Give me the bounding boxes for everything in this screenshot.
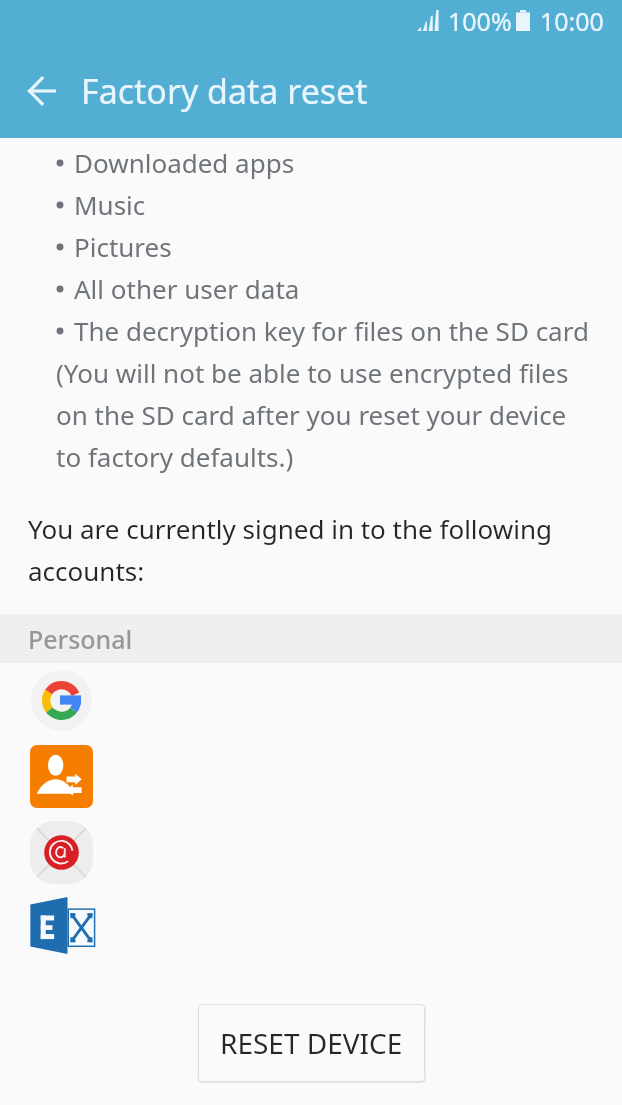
staticText: Pictures xyxy=(74,229,172,264)
staticText: on the SD card after you reset your devi… xyxy=(56,397,567,432)
staticText: The decryption key for files on the SD c… xyxy=(74,313,589,348)
staticText: Personal xyxy=(28,622,133,656)
button[interactable]: Exchange account xyxy=(29,896,96,955)
button[interactable]: Google account xyxy=(31,670,92,731)
button[interactable]: Email account xyxy=(30,821,93,884)
staticText: 100% xyxy=(448,4,512,36)
staticText: You are currently signed in to the follo… xyxy=(28,511,552,546)
staticText: Downloaded apps xyxy=(74,145,295,180)
staticText: to factory defaults.) xyxy=(56,439,294,474)
button[interactable]: Navigate up xyxy=(14,63,70,119)
staticText: All other user data xyxy=(74,271,300,306)
button[interactable]: Samsung account xyxy=(30,745,93,808)
staticText: Music xyxy=(74,187,146,222)
staticText: accounts: xyxy=(28,553,145,588)
staticText: RESET DEVICE xyxy=(220,1024,403,1062)
staticText: Factory data reset xyxy=(81,68,368,114)
button[interactable]: RESET DEVICE xyxy=(198,1004,425,1082)
staticText: 10:00 xyxy=(540,4,604,36)
staticText: (You will not be able to use encrypted f… xyxy=(56,355,569,390)
